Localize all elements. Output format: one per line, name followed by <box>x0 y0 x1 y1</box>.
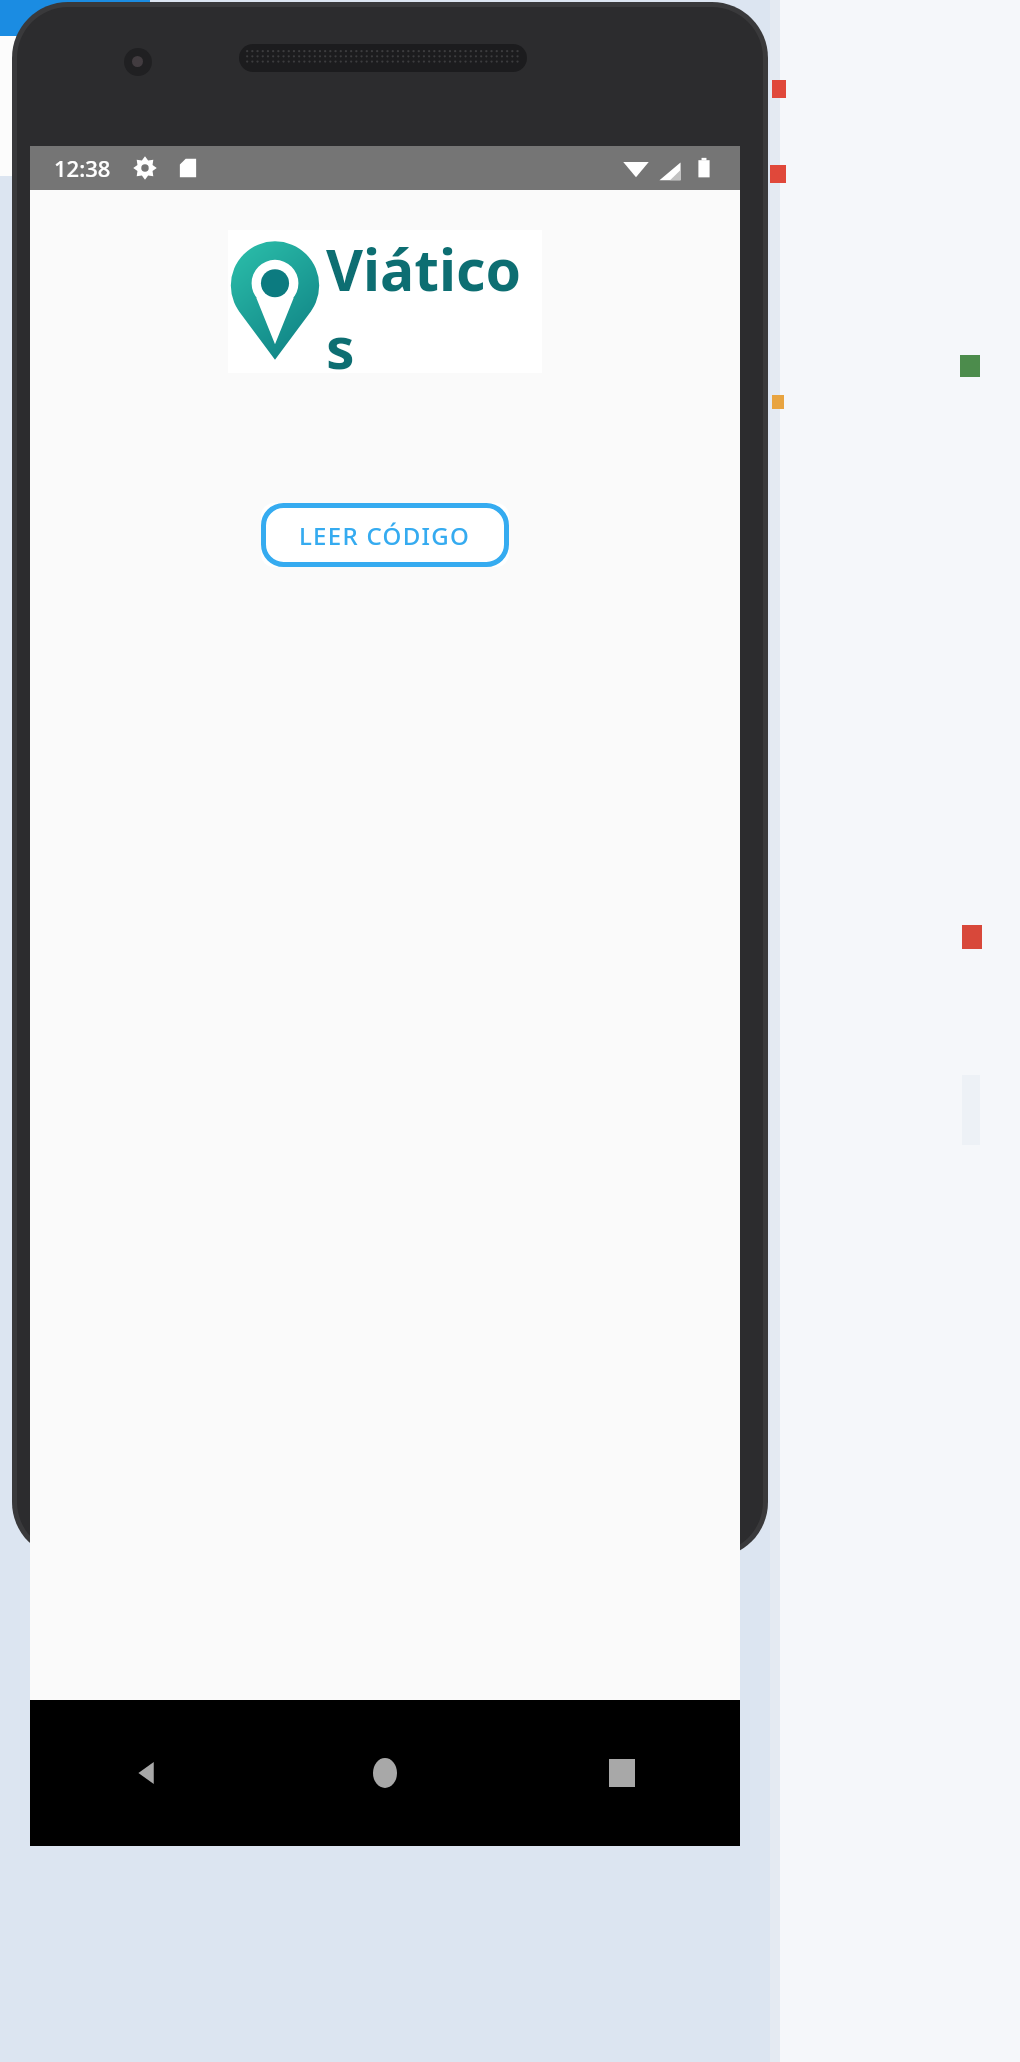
staticText: LEER CÓDIGO <box>299 519 471 552</box>
button[interactable]: Back <box>30 1700 266 1846</box>
staticText: Viáticos <box>326 230 542 373</box>
button[interactable]: LEER CÓDIGO <box>261 503 509 567</box>
staticText: 12:38 <box>54 153 111 183</box>
button[interactable]: Recent apps <box>503 1700 740 1846</box>
button[interactable]: Home <box>266 1700 503 1846</box>
